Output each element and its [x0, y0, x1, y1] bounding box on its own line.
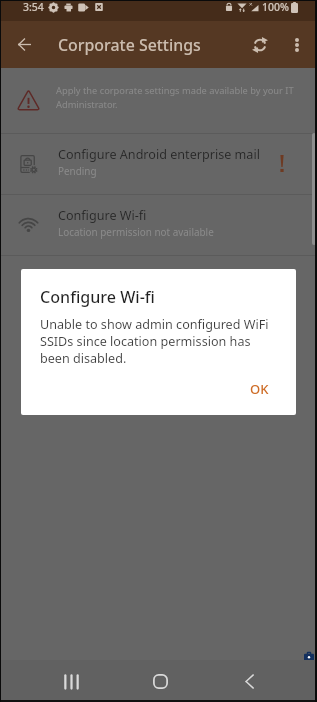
staticText: 3:54	[23, 0, 44, 14]
button[interactable]: Recent apps	[43, 663, 99, 700]
staticText: Apply the corporate settings made availa…	[56, 84, 301, 110]
staticText: Configure Wi-fi	[40, 286, 155, 308]
button[interactable]: Navigate up	[0, 21, 48, 68]
button[interactable]: Home	[132, 663, 188, 700]
staticText: Unable to show admin configured WiFi SSI…	[40, 316, 274, 367]
button[interactable]: Configure Android enterprise mail	[0, 134, 317, 194]
button[interactable]: Configure Wi-fi	[0, 195, 317, 255]
staticText: OK	[250, 380, 269, 398]
button[interactable]: More options	[276, 21, 317, 68]
staticText: Corporate Settings	[58, 34, 201, 56]
staticText: Pending	[58, 164, 97, 177]
button[interactable]: OK	[233, 371, 296, 407]
staticText: Configure Android enterprise mail	[58, 146, 260, 163]
button[interactable]: Sync	[235, 21, 276, 68]
staticText: Configure Wi-fi	[58, 207, 147, 224]
staticText: Location permission not available	[58, 225, 214, 238]
staticText: 100%	[262, 0, 289, 14]
button[interactable]: Back	[221, 663, 277, 700]
